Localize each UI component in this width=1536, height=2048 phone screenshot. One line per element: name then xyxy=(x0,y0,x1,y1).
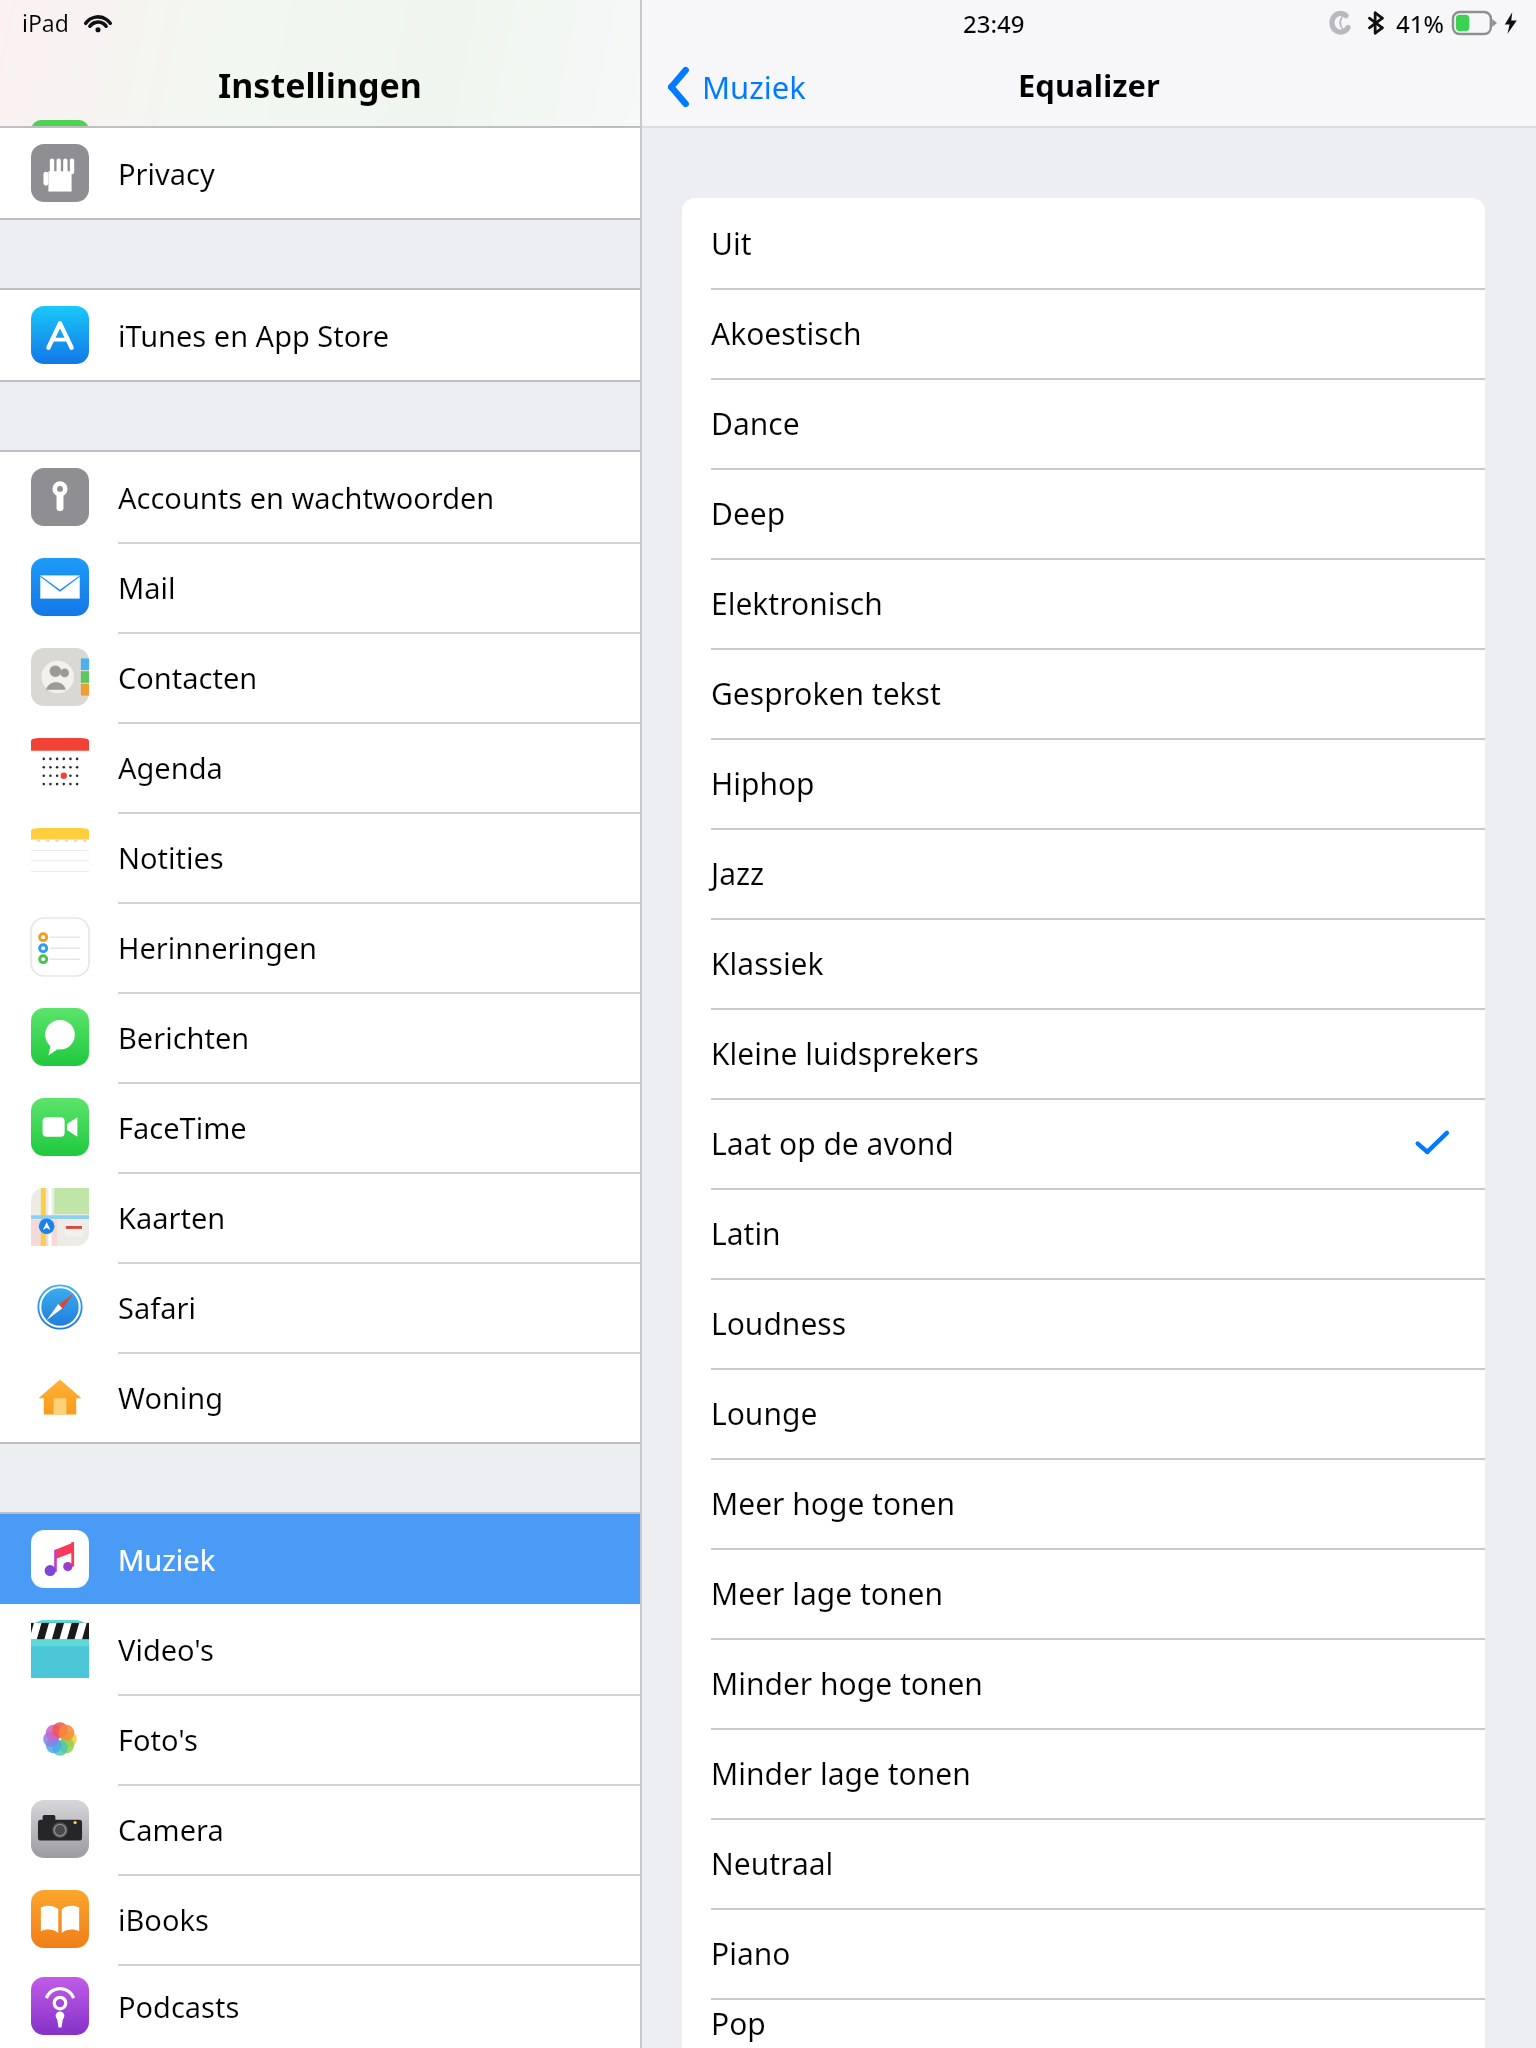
staticText: Minder lage tonen xyxy=(711,1753,971,1794)
button[interactable]: Mail xyxy=(0,542,640,632)
staticText: iTunes en App Store xyxy=(118,316,390,355)
button[interactable]: Uit xyxy=(682,198,1485,288)
button[interactable]: iBooks xyxy=(0,1874,640,1964)
staticText: Accounts en wachtwoorden xyxy=(118,478,495,517)
button[interactable]: Meer lage tonen xyxy=(682,1548,1485,1638)
button[interactable]: Jazz xyxy=(682,828,1485,918)
staticText: Kaarten xyxy=(118,1198,226,1237)
staticText: 41% xyxy=(1396,7,1444,40)
button[interactable]: Latin xyxy=(682,1188,1485,1278)
button[interactable]: Berichten xyxy=(0,992,640,1082)
staticText: Video's xyxy=(118,1630,214,1669)
staticText: Meer lage tonen xyxy=(711,1573,943,1614)
button[interactable]: Notities xyxy=(0,812,640,902)
staticText: Elektronisch xyxy=(711,583,883,624)
button[interactable]: Meer hoge tonen xyxy=(682,1458,1485,1548)
staticText: Woning xyxy=(118,1378,224,1417)
button[interactable]: Minder hoge tonen xyxy=(682,1638,1485,1728)
button[interactable]: Agenda xyxy=(0,722,640,812)
staticText: Dance xyxy=(711,403,800,444)
button[interactable]: Foto's xyxy=(0,1694,640,1784)
staticText: Laat op de avond xyxy=(711,1123,954,1164)
staticText: Equalizer xyxy=(1018,64,1160,106)
button[interactable]: Kleine luidsprekers xyxy=(682,1008,1485,1098)
staticText: Meer hoge tonen xyxy=(711,1483,956,1524)
button[interactable]: Lounge xyxy=(682,1368,1485,1458)
staticText: Loudness xyxy=(711,1303,847,1344)
button[interactable]: Video's xyxy=(0,1604,640,1694)
staticText: Privacy xyxy=(118,154,215,193)
staticText: Berichten xyxy=(118,1018,250,1057)
button[interactable]: Laat op de avond xyxy=(682,1098,1485,1188)
staticText: 23:49 xyxy=(963,7,1025,40)
button[interactable]: Neutraal xyxy=(682,1818,1485,1908)
staticText: Mail xyxy=(118,568,176,607)
button[interactable]: Muziek xyxy=(656,52,816,122)
button[interactable]: Gesproken tekst xyxy=(682,648,1485,738)
staticText: Lounge xyxy=(711,1393,818,1434)
button[interactable]: Kaarten xyxy=(0,1172,640,1262)
button[interactable]: Camera xyxy=(0,1784,640,1874)
staticText: Kleine luidsprekers xyxy=(711,1033,979,1074)
staticText: Notities xyxy=(118,838,224,877)
button[interactable]: iTunes en App Store xyxy=(0,290,640,380)
staticText: Minder hoge tonen xyxy=(711,1663,983,1704)
button[interactable]: Woning xyxy=(0,1352,640,1442)
staticText: Latin xyxy=(711,1213,781,1254)
staticText: Muziek xyxy=(702,66,806,108)
button[interactable]: Akoestisch xyxy=(682,288,1485,378)
button[interactable]: Accounts en wachtwoorden xyxy=(0,452,640,542)
staticText: iBooks xyxy=(118,1900,209,1939)
button[interactable]: Elektronisch xyxy=(682,558,1485,648)
staticText: Podcasts xyxy=(118,1987,240,2026)
staticText: Deep xyxy=(711,493,786,534)
button[interactable]: Piano xyxy=(682,1908,1485,1998)
button[interactable]: Dance xyxy=(682,378,1485,468)
staticText: Muziek xyxy=(118,1540,216,1579)
staticText: Gesproken tekst xyxy=(711,673,941,714)
staticText: FaceTime xyxy=(118,1108,247,1147)
staticText: Neutraal xyxy=(711,1843,834,1884)
button[interactable]: Hiphop xyxy=(682,738,1485,828)
button[interactable]: Herinneringen xyxy=(0,902,640,992)
staticText: Jazz xyxy=(711,853,765,894)
button[interactable]: Safari xyxy=(0,1262,640,1352)
button[interactable]: Minder lage tonen xyxy=(682,1728,1485,1818)
button[interactable]: Podcasts xyxy=(0,1964,640,2048)
button[interactable]: Pop xyxy=(682,1998,1485,2048)
button[interactable]: Privacy xyxy=(0,128,640,218)
button[interactable]: Deep xyxy=(682,468,1485,558)
staticText: Agenda xyxy=(118,748,223,787)
staticText: iPad xyxy=(22,7,69,38)
button[interactable]: Loudness xyxy=(682,1278,1485,1368)
staticText: Piano xyxy=(711,1933,791,1974)
button[interactable]: Muziek xyxy=(0,1514,640,1604)
staticText: Contacten xyxy=(118,658,258,697)
staticText: Hiphop xyxy=(711,763,815,804)
button[interactable]: Contacten xyxy=(0,632,640,722)
button[interactable]: Klassiek xyxy=(682,918,1485,1008)
staticText: Safari xyxy=(118,1288,196,1327)
staticText: Klassiek xyxy=(711,943,824,984)
staticText: Akoestisch xyxy=(711,313,862,354)
staticText: Foto's xyxy=(118,1720,198,1759)
staticText: Instellingen xyxy=(218,62,422,108)
staticText: Uit xyxy=(711,223,752,264)
staticText: Herinneringen xyxy=(118,928,317,967)
other: Selected xyxy=(1415,1129,1449,1157)
button[interactable]: FaceTime xyxy=(0,1082,640,1172)
staticText: Camera xyxy=(118,1810,224,1849)
staticText: Pop xyxy=(711,2003,766,2044)
